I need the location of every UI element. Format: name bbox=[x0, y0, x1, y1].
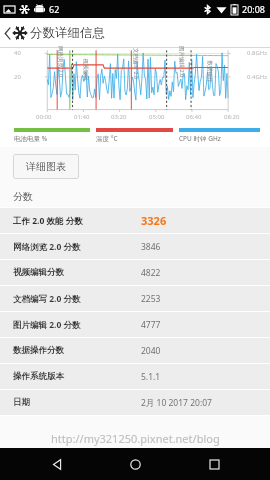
staticText: 分数 bbox=[13, 190, 33, 203]
staticText: 工作 2.0 效能 分数 bbox=[13, 215, 83, 227]
staticText: 4777 bbox=[141, 319, 161, 331]
staticText: 3846 bbox=[141, 241, 161, 253]
staticText: 操作系统版本 bbox=[13, 371, 64, 382]
button[interactable]: 数据操作分数 bbox=[0, 338, 270, 363]
staticText: CPU 时钟 GHz bbox=[179, 134, 221, 143]
button[interactable]: Home bbox=[113, 448, 157, 480]
button[interactable]: Recent apps bbox=[192, 448, 236, 480]
staticText: 03:20 bbox=[111, 113, 127, 121]
button[interactable]: 网络浏览 2.0 分数 bbox=[0, 234, 270, 259]
staticText: 20 bbox=[14, 73, 21, 81]
staticText: 06:40 bbox=[186, 113, 202, 121]
button[interactable]: 操作系统版本 bbox=[0, 364, 270, 389]
staticText: 文档编写 2.0 bbox=[132, 48, 140, 80]
staticText: 2月 10 2017 20:07 bbox=[141, 397, 212, 409]
staticText: 分数详细信息 bbox=[30, 25, 105, 41]
button[interactable]: 文档编写 2.0 分数 bbox=[0, 286, 270, 311]
button[interactable]: 工作 2.0 效能 分数 bbox=[0, 208, 270, 233]
staticText: 01:40 bbox=[74, 113, 90, 121]
staticText: 08:20 bbox=[224, 113, 240, 121]
button[interactable]: 日期 bbox=[0, 390, 270, 415]
staticText: 视频编辑分数 bbox=[13, 267, 64, 278]
staticText: 图片编辑 2.0 分数 bbox=[13, 319, 81, 331]
staticText: 图片编辑 2.0 bbox=[178, 46, 186, 78]
staticText: 数据操作 bbox=[205, 60, 212, 82]
staticText: 3326 bbox=[141, 213, 167, 228]
button[interactable]: Back bbox=[0, 26, 33, 40]
button[interactable]: Back bbox=[35, 448, 79, 480]
staticText: 5.1.1 bbox=[141, 371, 161, 383]
staticText: 62 bbox=[49, 3, 60, 15]
staticText: 40 bbox=[14, 49, 21, 57]
staticText: 2040 bbox=[141, 345, 161, 357]
button[interactable]: 图片编辑 2.0 分数 bbox=[0, 312, 270, 337]
staticText: 2253 bbox=[141, 293, 161, 305]
staticText: 00:00 bbox=[36, 113, 52, 121]
staticText: 网路浏览 2.0 bbox=[57, 46, 65, 78]
staticText: 详细图表 bbox=[26, 160, 66, 173]
staticText: http://my321250.pixnet.net/blog bbox=[51, 431, 220, 446]
staticText: 电池电量 % bbox=[14, 134, 48, 143]
staticText: 20:08 bbox=[242, 3, 266, 15]
staticText: 日期 bbox=[13, 397, 30, 408]
staticText: 0.4GHz bbox=[247, 73, 268, 81]
staticText: 4822 bbox=[141, 267, 161, 279]
staticText: 网络浏览 2.0 分数 bbox=[13, 241, 81, 253]
staticText: 0.8GHz bbox=[247, 49, 268, 57]
staticText: 视频编辑 bbox=[81, 58, 88, 80]
staticText: 05:00 bbox=[149, 113, 165, 121]
button[interactable]: 视频编辑分数 bbox=[0, 260, 270, 285]
staticText: 温度 °C bbox=[96, 134, 118, 143]
staticText: 数据操作分数 bbox=[13, 345, 64, 356]
staticText: 文档编写 2.0 分数 bbox=[13, 293, 81, 305]
button[interactable]: 详细图表 bbox=[13, 154, 79, 179]
